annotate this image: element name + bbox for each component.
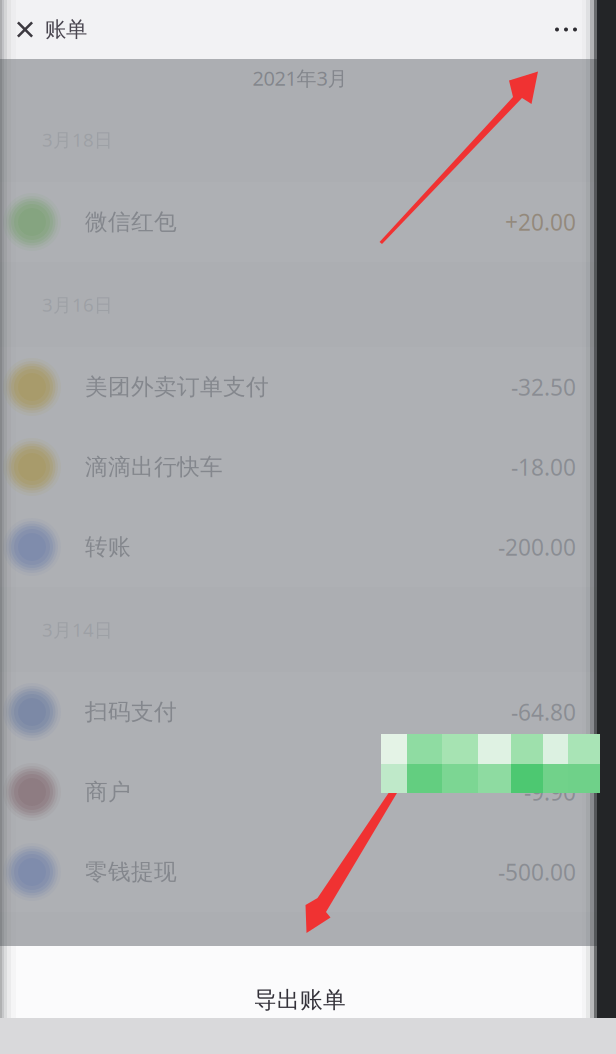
staticText: 2021年3月	[252, 65, 347, 91]
button[interactable]: 关闭	[8, 6, 42, 52]
staticText: 转账	[85, 533, 131, 561]
staticText: -9.90	[524, 777, 576, 807]
staticText: 商户	[85, 778, 131, 806]
button[interactable]: 商户	[0, 752, 600, 832]
staticText: 3月18日	[42, 127, 113, 152]
staticText: +20.00	[505, 207, 576, 237]
button[interactable]: 更多	[544, 6, 588, 52]
staticText: 扫码支付	[85, 698, 177, 726]
button[interactable]: 滴滴出行快车	[0, 427, 600, 507]
staticText: 3月16日	[42, 292, 113, 317]
staticText: -64.80	[511, 697, 576, 727]
staticText: 零钱提现	[85, 858, 177, 886]
button[interactable]: 零钱提现	[0, 832, 600, 912]
button[interactable]: 导出账单	[0, 946, 600, 1054]
button[interactable]: 微信红包	[0, 182, 600, 262]
staticText: 美团外卖订单支付	[85, 373, 269, 401]
staticText: 3月14日	[42, 617, 113, 642]
staticText: -18.00	[511, 452, 576, 482]
button[interactable]: 转账	[0, 507, 600, 587]
button[interactable]: 扫码支付	[0, 672, 600, 752]
staticText: 滴滴出行快车	[85, 453, 223, 481]
staticText: 微信红包	[85, 208, 177, 236]
staticText: 账单	[45, 16, 87, 43]
staticText: -500.00	[498, 857, 576, 887]
staticText: -32.50	[511, 372, 576, 402]
button[interactable]: 美团外卖订单支付	[0, 347, 600, 427]
staticText: -200.00	[498, 532, 576, 562]
staticText: 导出账单	[254, 986, 346, 1014]
